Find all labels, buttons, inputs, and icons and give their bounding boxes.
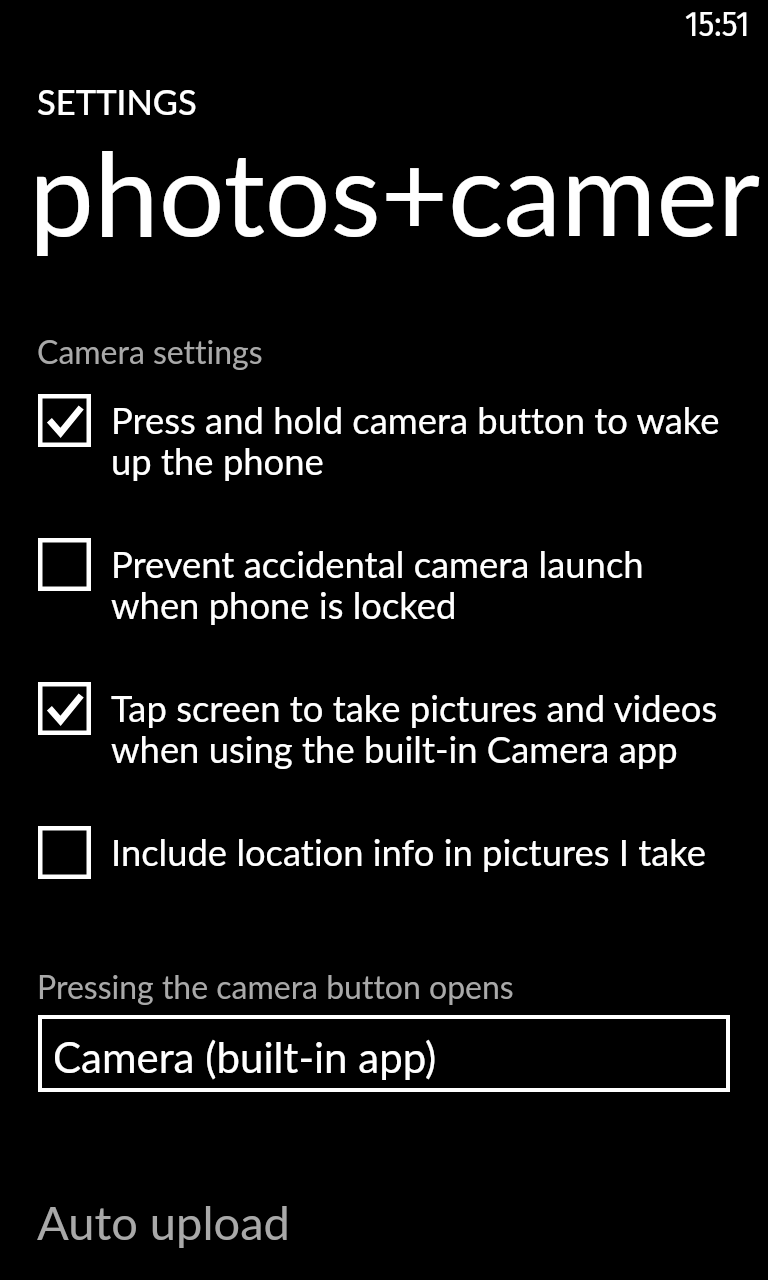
button[interactable]: Include location info in pictures I take: [0, 814, 768, 891]
button[interactable]: Camera (built-in app): [38, 1015, 730, 1092]
staticText: Camera (built-in app): [53, 1032, 437, 1082]
button[interactable]: Press and hold camera button to wake up …: [0, 382, 768, 490]
staticText: Camera settings: [37, 332, 263, 370]
staticText: 15:51: [685, 4, 750, 45]
staticText: Press and hold camera button to wake up …: [111, 398, 720, 482]
button[interactable]: Tap screen to take pictures and videos w…: [0, 670, 768, 778]
staticText: Tap screen to take pictures and videos w…: [111, 686, 718, 770]
staticText: Pressing the camera button opens: [37, 967, 514, 1005]
staticText: SETTINGS: [37, 81, 197, 122]
staticText: photos+camera: [29, 122, 768, 261]
button[interactable]: Prevent accidental camera launch when ph…: [0, 526, 768, 634]
staticText: Prevent accidental camera launch when ph…: [111, 542, 644, 626]
staticText: Auto upload: [37, 1194, 290, 1250]
staticText: Include location info in pictures I take: [111, 830, 707, 874]
